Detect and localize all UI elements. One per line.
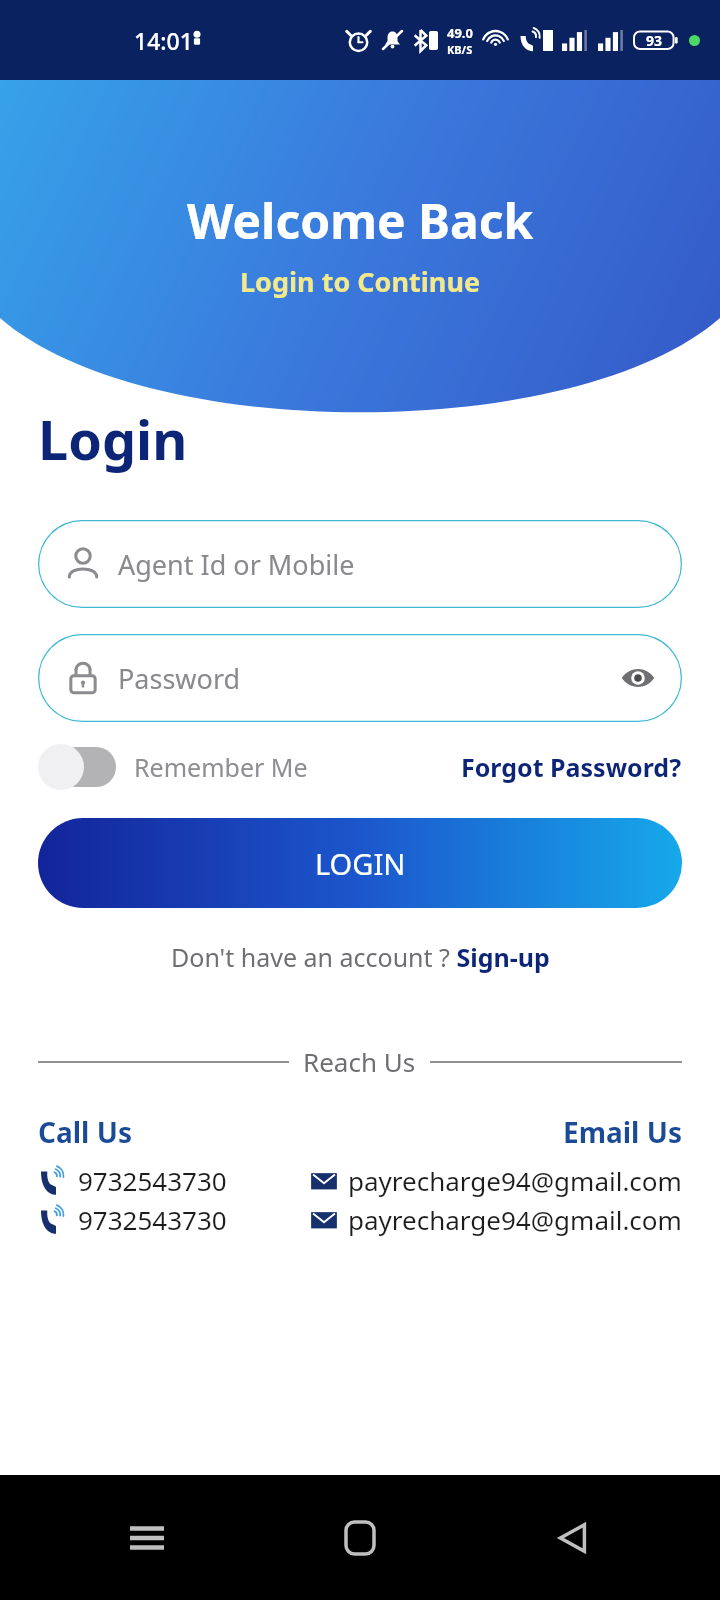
staticText: 9732543730 (78, 1202, 227, 1237)
staticText: Login (38, 402, 188, 476)
button[interactable]: payrecharge94@gmail.com (310, 1202, 682, 1237)
staticText: 14:01 (134, 25, 193, 56)
button[interactable]: Forgot Password? (461, 750, 682, 784)
button[interactable]: Back (544, 1509, 602, 1567)
staticText: LOGIN (315, 844, 406, 883)
button[interactable]: Don't have an account ? Sign-up (38, 940, 682, 974)
button[interactable]: Remember Me (38, 744, 308, 790)
button[interactable]: LOGIN (38, 818, 682, 908)
button[interactable]: Show password (620, 660, 656, 696)
button[interactable]: Home (331, 1509, 389, 1567)
staticText: Welcome Back (187, 188, 534, 253)
button[interactable]: 9732543730 (38, 1202, 227, 1237)
staticText: payrecharge94@gmail.com (348, 1202, 682, 1237)
staticText: 9732543730 (78, 1163, 227, 1198)
staticText: Password (118, 660, 241, 697)
button[interactable]: 9732543730 (38, 1163, 227, 1198)
staticText: 93 (646, 31, 663, 50)
staticText: 49.0 (447, 24, 473, 42)
staticText: Remember Me (134, 750, 308, 784)
staticText: KB/S (447, 42, 473, 57)
staticText: payrecharge94@gmail.com (348, 1163, 682, 1198)
staticText: Don't have an account ? Sign-up (171, 940, 550, 974)
button[interactable]: Password (38, 634, 682, 722)
staticText: Email Us (563, 1113, 682, 1151)
staticText: Login to Continue (240, 263, 481, 300)
staticText: Agent Id or Mobile (118, 546, 355, 583)
staticText: Call Us (38, 1113, 132, 1151)
staticText: Reach Us (303, 1044, 416, 1079)
button[interactable]: Agent Id or Mobile (38, 520, 682, 608)
staticText: Forgot Password? (461, 750, 682, 784)
button[interactable]: Recents (118, 1509, 176, 1567)
button[interactable]: payrecharge94@gmail.com (310, 1163, 682, 1198)
